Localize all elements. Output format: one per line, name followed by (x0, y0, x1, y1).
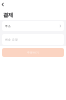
staticText: 주문하기 (27, 51, 39, 54)
button[interactable]: 주소 (2, 21, 64, 31)
button[interactable]: 배송 요청 (2, 34, 64, 45)
staticText: 배송 요청 (5, 38, 18, 41)
button[interactable]: 주문하기 (2, 48, 64, 57)
button[interactable]: Back (0, 0, 6, 9)
staticText: 주소 (5, 24, 11, 28)
staticText: 결제 (3, 12, 13, 18)
